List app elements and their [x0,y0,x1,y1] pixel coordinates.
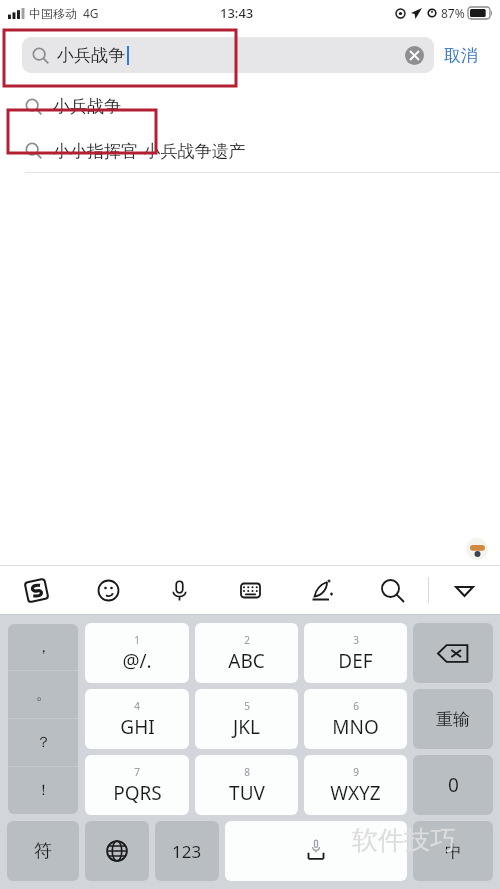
staticText: 0 [448,772,459,798]
button[interactable]: Sogou [0,566,72,614]
button[interactable]: ， [8,624,78,670]
button[interactable]: 。 [8,671,78,718]
button[interactable]: Emoji [72,566,144,614]
staticText: JKL [233,714,260,740]
button[interactable]: Switch language [85,821,149,881]
staticText: 符 [34,840,52,863]
button[interactable]: Enter [413,821,493,881]
staticText: 13:43 [220,4,254,22]
button[interactable]: 6 [304,689,407,749]
staticText: 4G [83,5,99,21]
button[interactable]: 7 [85,755,189,815]
button[interactable]: Hide keyboard [429,566,500,614]
staticText: 123 [172,840,202,863]
button[interactable]: Backspace [413,623,493,683]
staticText: 软件技巧 [352,824,456,857]
staticText: 中 [445,841,462,862]
staticText: 6 [353,699,359,713]
staticText: 4 [134,699,140,713]
button[interactable]: 0 [413,755,493,815]
staticText: 小兵战争 [57,45,125,66]
button[interactable]: Keyboard [215,566,286,614]
staticText: 小小指挥官-小兵战争遗产 [53,139,246,162]
button[interactable]: 小小指挥官-小兵战争遗产 [0,128,500,172]
staticText: ？ [36,733,51,752]
button[interactable]: Clear text [405,46,424,65]
button[interactable]: 小兵战争 [0,84,500,128]
staticText: 1 [134,633,140,647]
staticText: WXYZ [330,780,381,806]
button[interactable]: 3 [304,623,407,683]
staticText: DEF [338,648,373,674]
button[interactable]: 重输 [413,689,493,749]
staticText: 。 [36,685,51,704]
button[interactable]: Account [466,538,488,560]
button[interactable]: 取消 [434,39,488,72]
staticText: 3 [353,633,359,647]
staticText: @/. [122,648,152,674]
button[interactable]: ！ [8,767,78,814]
staticText: TUV [229,780,265,806]
staticText: 中国移动 [29,6,77,21]
button[interactable]: Voice input [144,566,215,614]
staticText: ！ [36,781,51,800]
button[interactable]: 符 [7,821,79,881]
staticText: GHI [120,714,155,740]
staticText: 2 [244,633,250,647]
button[interactable]: Handwriting [286,566,357,614]
staticText: 5 [244,699,250,713]
staticText: 87% [441,5,465,21]
button[interactable]: 4 [85,689,189,749]
staticText: 小兵战争 [53,96,121,117]
button[interactable]: Search [357,566,428,614]
button[interactable]: 小兵战争 [22,37,434,73]
button[interactable]: 1 [85,623,189,683]
button[interactable]: 2 [195,623,298,683]
staticText: 7 [134,765,140,779]
button[interactable]: Space [225,821,407,881]
button[interactable]: ？ [8,719,78,766]
staticText: 重输 [436,709,470,730]
staticText: ， [36,638,51,657]
staticText: 8 [244,765,250,779]
staticText: MNO [332,714,379,740]
button[interactable]: 5 [195,689,298,749]
button[interactable]: 8 [195,755,298,815]
staticText: ABC [228,648,265,674]
button[interactable]: 9 [304,755,407,815]
staticText: PQRS [113,780,162,806]
staticText: 9 [353,765,359,779]
staticText: 取消 [444,45,478,66]
button[interactable]: 123 [155,821,219,881]
